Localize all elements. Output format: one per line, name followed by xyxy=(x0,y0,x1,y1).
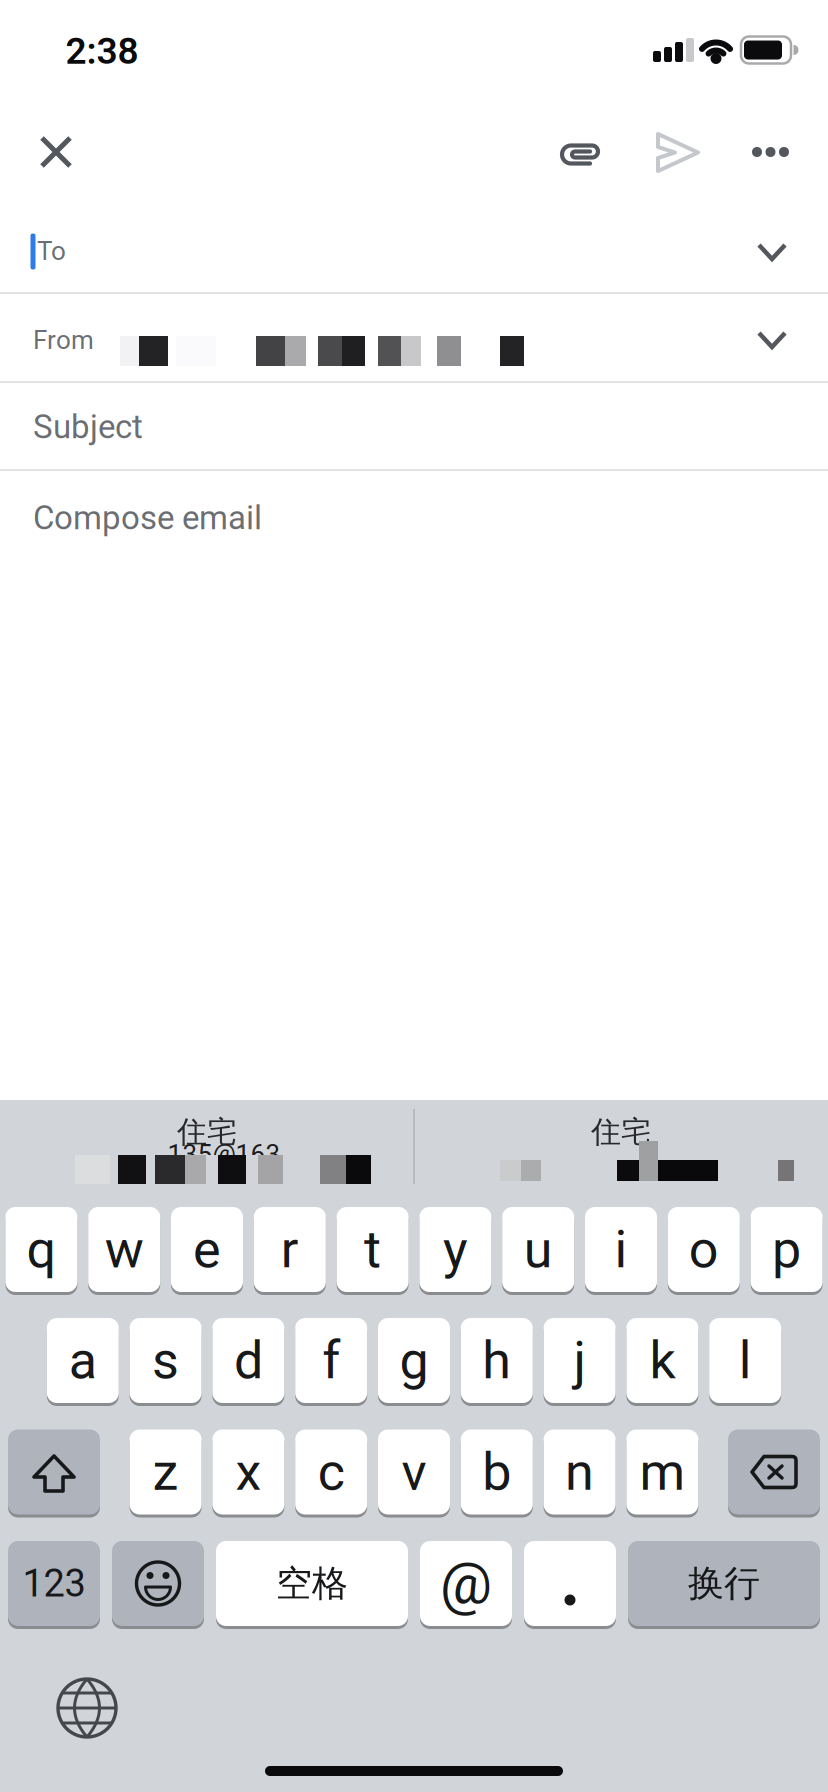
staticText: To xyxy=(37,236,66,266)
staticText: From xyxy=(33,325,94,355)
staticText: 住宅 xyxy=(591,1113,651,1151)
staticText: t xyxy=(364,1219,381,1280)
staticText: o xyxy=(689,1219,719,1280)
staticText: 135@163 xyxy=(167,1139,280,1169)
staticText: n xyxy=(565,1441,594,1502)
staticText: 换行 xyxy=(688,1561,760,1606)
staticText: @ xyxy=(440,1549,492,1617)
staticText: x xyxy=(235,1441,261,1502)
staticText: p xyxy=(772,1219,801,1280)
staticText: u xyxy=(524,1219,553,1280)
staticText: d xyxy=(234,1330,263,1391)
staticText: j xyxy=(574,1330,586,1391)
staticText: l xyxy=(739,1330,752,1391)
staticText: c xyxy=(318,1441,345,1502)
staticText: k xyxy=(649,1330,675,1391)
staticText: 123 xyxy=(22,1561,85,1606)
staticText: 空格 xyxy=(276,1561,348,1606)
staticText: s xyxy=(152,1330,179,1391)
staticText: g xyxy=(399,1330,428,1391)
staticText: e xyxy=(193,1219,221,1280)
staticText: a xyxy=(69,1330,97,1391)
staticText: r xyxy=(281,1219,299,1280)
staticText: b xyxy=(482,1441,511,1502)
staticText: v xyxy=(401,1441,426,1502)
staticText: y xyxy=(443,1219,468,1280)
staticText: h xyxy=(482,1330,511,1391)
staticText: Compose email xyxy=(33,499,262,537)
staticText: Subject xyxy=(33,408,143,446)
staticText: m xyxy=(639,1441,685,1502)
staticText: f xyxy=(322,1330,340,1391)
staticText: q xyxy=(26,1219,56,1280)
staticText: 住宅 xyxy=(177,1113,237,1151)
staticText: z xyxy=(153,1441,179,1502)
staticText: i xyxy=(614,1219,627,1280)
staticText: w xyxy=(105,1219,144,1280)
staticText: 2:38 xyxy=(65,29,138,73)
